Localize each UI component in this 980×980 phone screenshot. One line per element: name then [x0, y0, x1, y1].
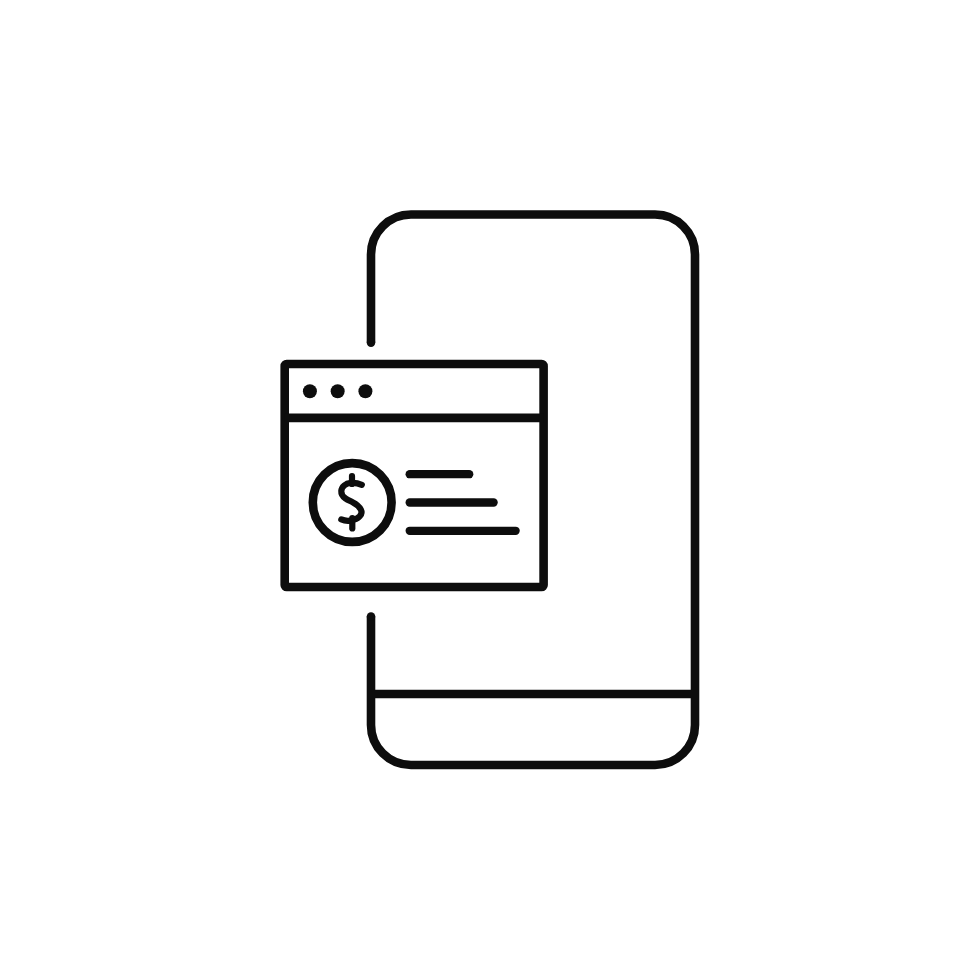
- button[interactable]: Mobile payment illustration: [0, 0, 980, 980]
